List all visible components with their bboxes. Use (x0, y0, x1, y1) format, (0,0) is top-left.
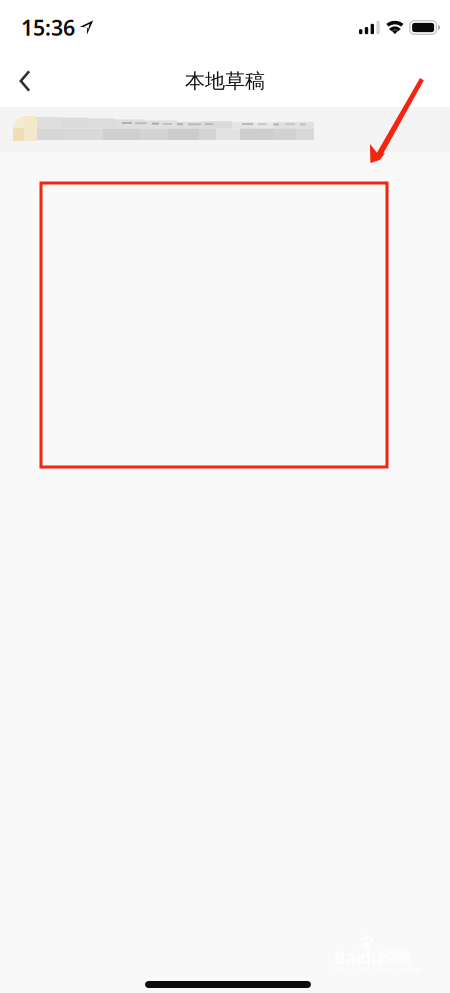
staticText: 本地草稿 (185, 69, 265, 93)
staticText: 15:36 (21, 13, 75, 42)
button[interactable] (0, 107, 450, 152)
button[interactable]: 返回 (2, 59, 48, 103)
